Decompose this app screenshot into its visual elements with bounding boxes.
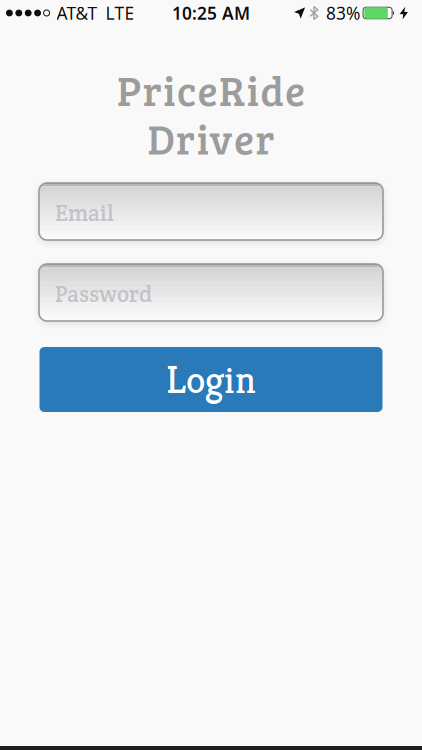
- staticText: 10:25 AM: [172, 1, 250, 24]
- staticText: Login: [166, 355, 256, 404]
- button[interactable]: Login: [39, 347, 382, 412]
- staticText: Email: [55, 198, 114, 227]
- button[interactable]: Password: [39, 264, 383, 321]
- staticText: AT&T: [57, 1, 98, 24]
- staticText: Password: [55, 279, 152, 308]
- staticText: PriceRide: [117, 61, 305, 118]
- staticText: Driver: [147, 110, 274, 166]
- staticText: 83%: [326, 1, 360, 24]
- staticText: LTE: [106, 1, 135, 24]
- button[interactable]: Email: [39, 183, 383, 240]
